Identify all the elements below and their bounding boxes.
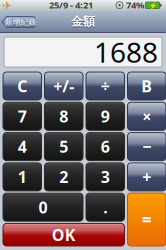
button[interactable]: B bbox=[127, 72, 166, 100]
button[interactable]: C bbox=[3, 72, 41, 100]
button[interactable]: 1 bbox=[3, 163, 41, 191]
button[interactable]: × bbox=[127, 102, 166, 130]
button[interactable]: + bbox=[127, 163, 166, 191]
button[interactable]: OK bbox=[3, 223, 124, 246]
staticText: 2 bbox=[59, 166, 68, 187]
staticText: 8 bbox=[59, 106, 68, 127]
button[interactable]: 6 bbox=[86, 133, 124, 161]
button[interactable]: ÷ bbox=[86, 72, 124, 100]
staticText: 4 bbox=[18, 136, 27, 157]
staticText: 9 bbox=[101, 106, 110, 127]
staticText: B bbox=[141, 75, 152, 97]
staticText: 0 bbox=[38, 197, 47, 218]
button[interactable]: 新增紀錄 bbox=[2, 16, 35, 27]
staticText: 1 bbox=[18, 166, 27, 187]
staticText: 7 bbox=[18, 106, 27, 127]
button[interactable]: 5 bbox=[44, 133, 83, 161]
staticText: 金額 bbox=[71, 14, 95, 29]
staticText: 25/9 - 4:21 bbox=[49, 0, 93, 11]
button[interactable]: 3 bbox=[86, 163, 124, 191]
staticText: − bbox=[142, 136, 151, 157]
button[interactable]: 9 bbox=[86, 102, 124, 130]
staticText: × bbox=[142, 106, 151, 127]
button[interactable]: = bbox=[127, 193, 166, 246]
button[interactable]: − bbox=[127, 133, 166, 161]
staticText: 金額 bbox=[71, 15, 95, 30]
staticText: + bbox=[142, 166, 151, 187]
staticText: +/- bbox=[53, 75, 74, 97]
staticText: 1688 bbox=[94, 33, 158, 71]
staticText: ÷ bbox=[101, 75, 110, 97]
staticText: 新增紀錄 bbox=[4, 17, 36, 27]
button[interactable]: 7 bbox=[3, 102, 41, 130]
button[interactable]: 4 bbox=[3, 133, 41, 161]
staticText: C bbox=[17, 75, 27, 97]
button[interactable]: 8 bbox=[44, 102, 83, 130]
staticText: . bbox=[103, 197, 107, 218]
button[interactable]: 2 bbox=[44, 163, 83, 191]
staticText: 3 bbox=[101, 166, 110, 187]
staticText: ✈ bbox=[2, 0, 12, 12]
button[interactable]: . bbox=[86, 193, 124, 221]
staticText: 5 bbox=[59, 136, 68, 157]
button[interactable]: 0 bbox=[3, 193, 83, 221]
staticText: ⚡ bbox=[149, 1, 157, 9]
staticText: OK bbox=[52, 224, 76, 245]
button[interactable]: +/- bbox=[44, 72, 83, 100]
staticText: = bbox=[142, 208, 152, 231]
staticText: 6 bbox=[101, 136, 110, 157]
staticText: 74% bbox=[126, 0, 144, 11]
